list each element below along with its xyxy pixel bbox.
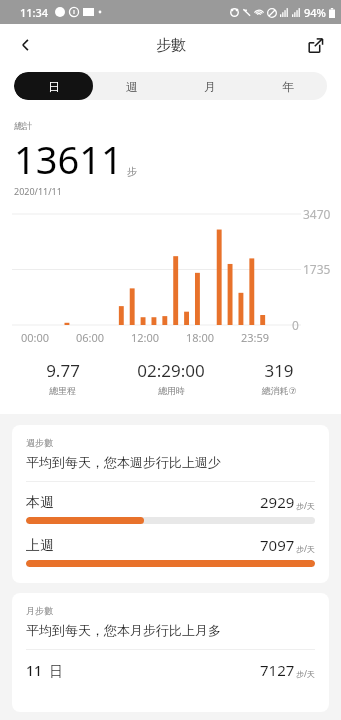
staticText: 11:34 (20, 5, 49, 20)
button[interactable]: 月步數 (12, 593, 329, 712)
staticText: 06:00 (76, 330, 105, 345)
staticText: 週步數 (26, 437, 53, 448)
button[interactable]: 週步數 (12, 425, 329, 583)
staticText: 步 (127, 165, 137, 178)
button[interactable]: 9.77 (8, 359, 117, 396)
staticText: 步/天 (296, 543, 315, 554)
staticText: 總里程 (49, 385, 76, 396)
staticText: 3470 (303, 206, 331, 222)
staticText: 月 (204, 79, 216, 94)
button[interactable]: 週 (93, 72, 171, 100)
staticText: 本週 (26, 494, 54, 512)
staticText: 2929 (260, 492, 295, 512)
button[interactable]: Share (297, 27, 333, 63)
staticText: 平均到每天，您本月步行比上月多 (26, 622, 221, 638)
staticText: 0 (292, 317, 299, 333)
staticText: 日 (48, 79, 60, 94)
staticText: 00:00 (21, 330, 50, 345)
staticText: 總計 (14, 120, 32, 131)
staticText: 總消耗⑦ (261, 385, 297, 396)
staticText: 12:00 (131, 330, 160, 345)
staticText: 9.77 (46, 359, 80, 382)
staticText: 13611 (14, 133, 123, 185)
staticText: 02:29:00 (137, 359, 205, 382)
staticText: 94% (304, 5, 326, 20)
button[interactable]: 月 (171, 72, 249, 100)
staticText: 7097 (260, 535, 295, 555)
button[interactable]: 319 (225, 359, 333, 396)
staticText: 23:59 (241, 330, 270, 345)
staticText: 11 日 (26, 661, 64, 680)
staticText: 上週 (26, 537, 54, 555)
button[interactable]: 年 (249, 72, 327, 100)
staticText: 步/天 (296, 668, 315, 679)
button[interactable]: Back (8, 27, 44, 63)
staticText: 週 (126, 79, 138, 94)
staticText: 1735 (303, 261, 331, 277)
staticText: 319 (264, 359, 294, 382)
button[interactable]: 日 (14, 72, 93, 100)
staticText: 7127 (260, 660, 295, 680)
staticText: 總用時 (158, 385, 185, 396)
staticText: 平均到每天，您本週步行比上週少 (26, 454, 221, 470)
staticText: 2020/11/11 (14, 185, 62, 197)
staticText: 月步數 (26, 605, 53, 616)
staticText: 步數 (156, 36, 186, 55)
staticText: 步/天 (296, 500, 315, 511)
staticText: 18:00 (186, 330, 215, 345)
button[interactable]: 02:29:00 (117, 359, 225, 396)
staticText: 年 (282, 79, 294, 94)
